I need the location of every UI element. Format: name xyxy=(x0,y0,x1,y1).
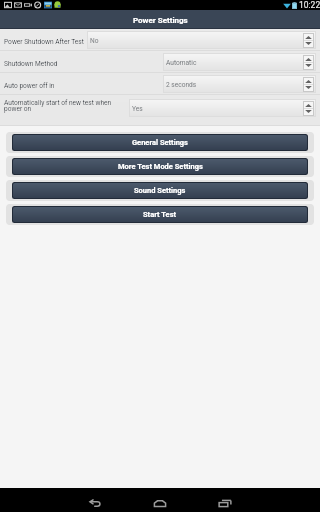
button[interactable]: Adjust value xyxy=(303,33,314,48)
button[interactable]: General Settings xyxy=(6,132,314,153)
staticText: Power Shutdown After Test xyxy=(4,38,84,46)
button[interactable]: Start Test xyxy=(6,204,314,225)
button[interactable]: Automatically start of new test when xyxy=(0,95,320,125)
staticText: Auto power off in xyxy=(4,82,55,90)
staticText: power on xyxy=(4,105,32,113)
staticText: Start Test xyxy=(143,210,177,219)
staticText: No xyxy=(90,37,99,45)
button[interactable]: Sound Settings xyxy=(6,180,314,201)
button[interactable]: Back xyxy=(80,488,110,512)
button[interactable]: Auto power off in xyxy=(0,73,320,94)
button[interactable]: Recent apps xyxy=(210,488,240,512)
staticText: Automatic xyxy=(166,59,197,67)
staticText: 2 seconds xyxy=(166,81,197,89)
staticText: Sound Settings xyxy=(134,186,186,195)
button[interactable]: Adjust value xyxy=(303,77,314,92)
staticText: General Settings xyxy=(132,138,188,147)
button[interactable]: Home xyxy=(145,488,175,512)
button[interactable]: Adjust value xyxy=(303,55,314,70)
staticText: Power Settings xyxy=(133,16,188,25)
button[interactable]: Adjust value xyxy=(303,101,314,116)
button[interactable]: Shutdown Method xyxy=(0,51,320,72)
staticText: 10:22 xyxy=(299,0,320,10)
staticText: More Test Mode Settings xyxy=(118,162,203,171)
staticText: Yes xyxy=(132,105,143,113)
staticText: Automatically start of new test when xyxy=(4,99,112,107)
button[interactable]: Power Shutdown After Test xyxy=(0,29,320,50)
button[interactable]: More Test Mode Settings xyxy=(6,156,314,177)
staticText: Shutdown Method xyxy=(4,60,58,68)
